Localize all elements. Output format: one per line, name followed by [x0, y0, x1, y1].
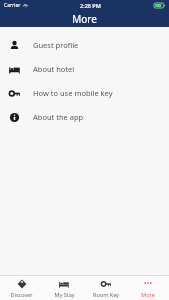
staticText: About hotel — [33, 64, 75, 74]
button[interactable]: More — [127, 276, 169, 300]
staticText: About the app — [33, 112, 84, 122]
button[interactable]: About the app — [0, 105, 169, 129]
button[interactable]: My Stay — [43, 276, 85, 300]
button[interactable]: Room Key — [85, 276, 127, 300]
staticText: 2:26 PM — [80, 2, 101, 9]
staticText: My Stay — [54, 291, 75, 298]
staticText: Carrier — [4, 2, 21, 9]
staticText: How to use mobile key — [33, 88, 113, 98]
staticText: More — [72, 12, 97, 26]
staticText: More — [141, 291, 155, 298]
staticText: Room Key — [93, 291, 119, 298]
button[interactable]: Discover — [0, 276, 43, 300]
button[interactable]: Guest profile — [0, 33, 169, 57]
staticText: Discover — [10, 291, 33, 298]
staticText: Guest profile — [33, 40, 79, 50]
button[interactable]: How to use mobile key — [0, 81, 169, 105]
button[interactable]: About hotel — [0, 57, 169, 81]
